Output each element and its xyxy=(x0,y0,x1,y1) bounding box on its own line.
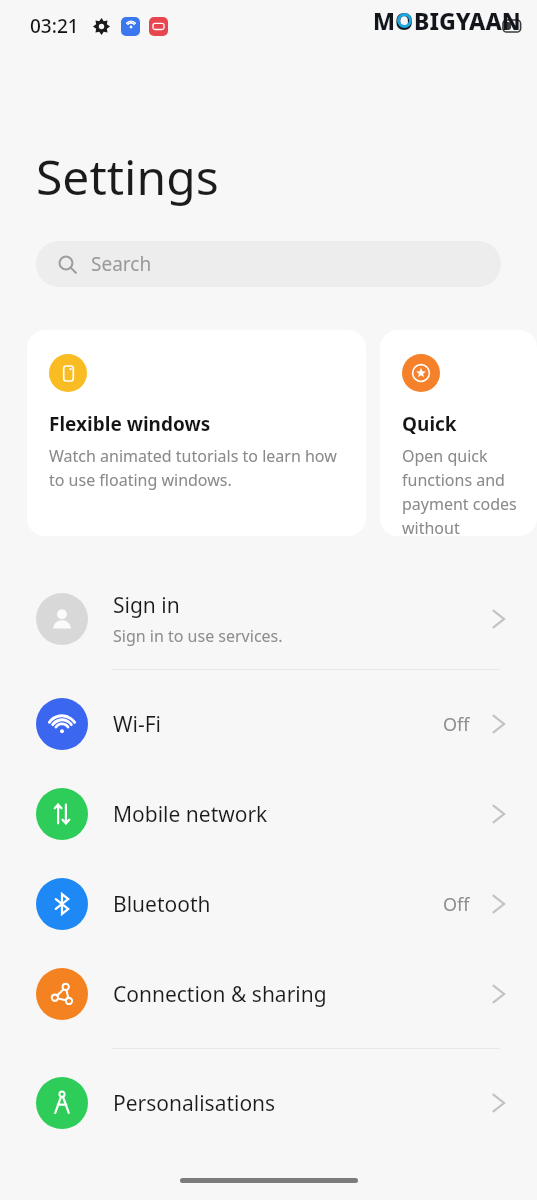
staticText: Sign in to use services. xyxy=(113,625,283,647)
staticText: Mobile network xyxy=(113,800,492,829)
button[interactable]: Personalisations xyxy=(0,1058,537,1148)
button[interactable]: Quick launch xyxy=(380,330,537,536)
button[interactable]: Wi-Fi xyxy=(0,679,537,769)
staticText: Personalisations xyxy=(113,1089,492,1118)
staticText: O xyxy=(395,5,414,36)
staticText: M xyxy=(373,5,395,36)
staticText: Search xyxy=(91,251,152,277)
button[interactable]: Sign in xyxy=(0,569,537,669)
staticText: Off xyxy=(443,892,470,917)
staticText: Quick launch xyxy=(402,411,521,437)
staticText: Sign in xyxy=(113,591,180,620)
staticText: Settings xyxy=(36,144,219,209)
button[interactable]: Flexible windows xyxy=(27,330,366,536)
staticText: Bluetooth xyxy=(113,890,443,919)
staticText: BIGYAAN xyxy=(414,5,521,36)
staticText: Flexible windows xyxy=(49,411,211,437)
button[interactable]: Bluetooth xyxy=(0,859,537,949)
button[interactable]: Search xyxy=(36,241,501,287)
staticText: Open quick functions and payment codes w… xyxy=(402,445,521,536)
button[interactable]: Connection & sharing xyxy=(0,949,537,1039)
staticText: 03:21 xyxy=(30,13,79,39)
staticText: Wi-Fi xyxy=(113,710,443,739)
button[interactable]: Mobile network xyxy=(0,769,537,859)
staticText: Off xyxy=(443,712,470,737)
staticText: Watch animated tutorials to learn how to… xyxy=(49,445,350,491)
staticText: Connection & sharing xyxy=(113,980,492,1009)
